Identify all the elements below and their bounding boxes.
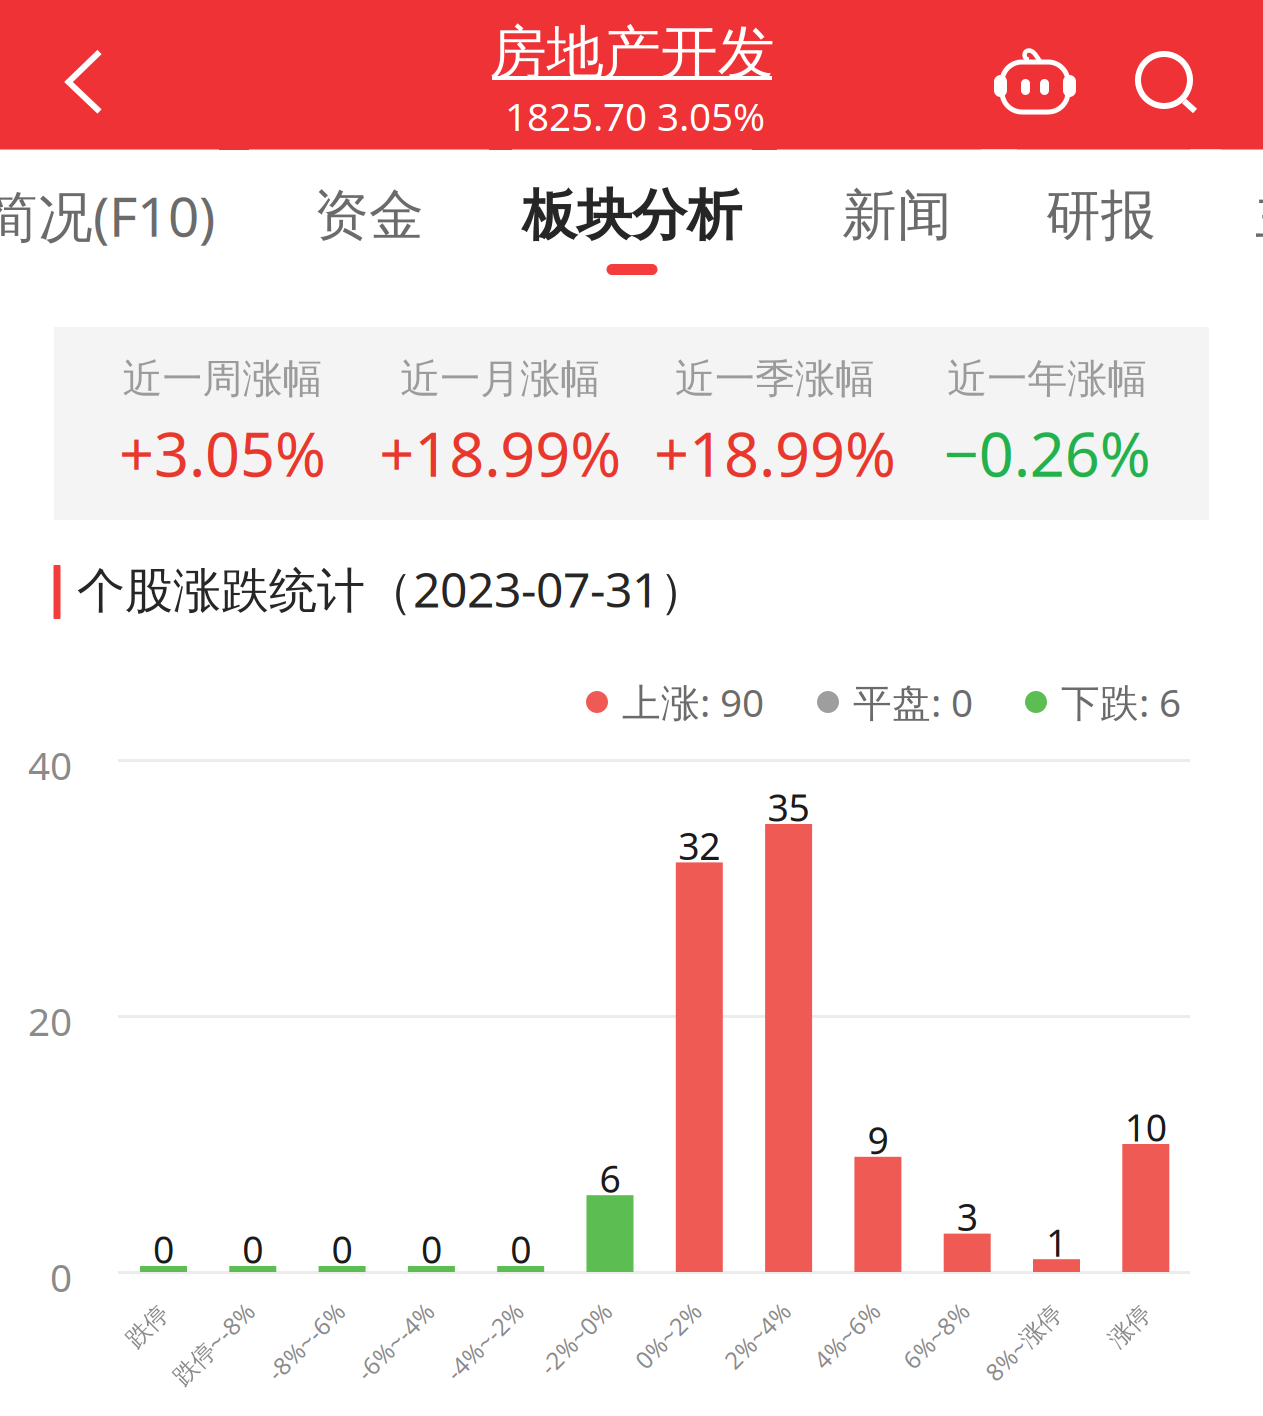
staticText: 简况(F10) [0,179,215,252]
staticText: 近一年涨幅 [947,354,1147,403]
button[interactable]: AI assistant [975,21,1095,151]
staticText: 4%~6% [806,1320,888,1351]
staticText: 6%~8% [895,1320,977,1351]
staticText: 2%~4% [716,1320,798,1351]
staticText: 0 [332,1224,353,1274]
staticText: 房地产开发 [489,18,774,88]
staticText: 3 [957,1192,978,1241]
staticText: 1 [1046,1217,1067,1267]
staticText: 9 [867,1115,888,1165]
staticText: 下跌: 6 [1061,676,1181,728]
staticText: -6%~-4% [346,1326,444,1357]
staticText: 上涨: 90 [622,676,764,728]
button[interactable]: Back [24,7,144,157]
staticText: 涨停 [1106,1312,1154,1341]
staticText: 0 [510,1224,531,1274]
staticText: -8%~-6% [257,1326,355,1357]
button[interactable]: 研报 [981,149,1221,294]
button[interactable]: 新闻 [777,149,1017,294]
staticText: 6 [599,1153,620,1203]
staticText: 新闻 [842,182,952,249]
staticText: 10 [1125,1102,1167,1152]
staticText: 0 [50,1251,72,1303]
staticText: 个股涨跌统计（2023-07-31） [77,557,707,621]
staticText: 板块分析 [522,182,742,249]
staticText: 跌停~-8% [162,1328,266,1359]
staticText: 研报 [1046,182,1156,249]
staticText: 近一季涨幅 [675,354,875,403]
staticText: 32 [678,821,720,870]
staticText: 1825.70 3.05% [505,90,765,142]
staticText: 0 [421,1224,442,1274]
button[interactable]: 主力 [1190,149,1263,294]
staticText: 40 [28,739,72,791]
staticText: -2%~0% [531,1323,621,1354]
staticText: +18.99% [379,412,621,494]
staticText: 主力 [1255,182,1263,249]
staticText: +3.05% [119,412,326,494]
button[interactable]: Search [1107,18,1227,148]
staticText: 0 [242,1224,263,1274]
staticText: 资金 [314,182,424,249]
staticText: −0.26% [944,412,1151,494]
button[interactable]: 板块分析 [512,149,752,294]
button[interactable]: 简况(F10) [0,149,219,294]
staticText: +18.99% [654,412,896,494]
staticText: 0%~2% [627,1320,709,1351]
button[interactable]: 资金 [249,149,489,294]
staticText: 8%~涨停 [975,1327,1071,1358]
staticText: 35 [768,782,810,832]
staticText: 近一月涨幅 [400,354,600,403]
staticText: 近一周涨幅 [122,354,322,403]
staticText: 20 [28,995,72,1047]
staticText: 平盘: 0 [853,676,973,728]
staticText: 跌停 [123,1312,171,1341]
staticText: -4%~-2% [435,1326,533,1357]
staticText: 0 [153,1224,174,1274]
